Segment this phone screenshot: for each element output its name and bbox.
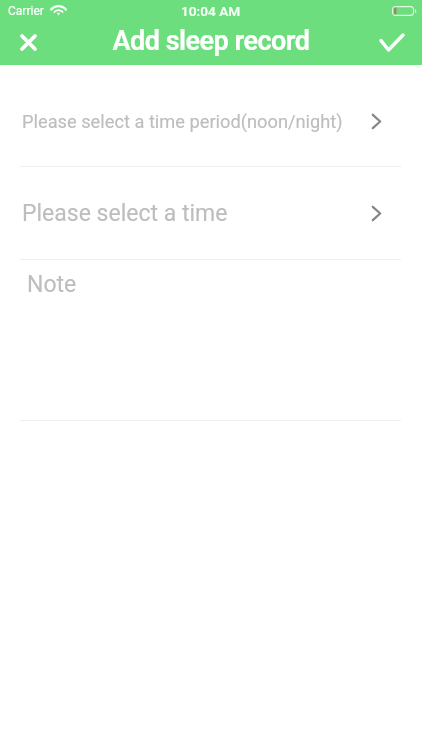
other: Wi-Fi [47, 3, 71, 17]
button[interactable]: Close [6, 21, 50, 64]
button[interactable]: Save [370, 21, 414, 64]
staticText: Add sleep record [112, 25, 310, 57]
button[interactable]: Please select a time [0, 167, 422, 259]
staticText: Please select a time [22, 200, 228, 227]
staticText: Note [27, 271, 77, 298]
button[interactable]: Note [0, 260, 422, 420]
staticText: Please select a time period(noon/night) [22, 111, 343, 132]
button[interactable]: Please select a time period(noon/night) [0, 73, 422, 166]
other: Battery [392, 6, 416, 16]
staticText: 10:04 AM [181, 3, 241, 19]
staticText: Carrier [8, 4, 44, 18]
